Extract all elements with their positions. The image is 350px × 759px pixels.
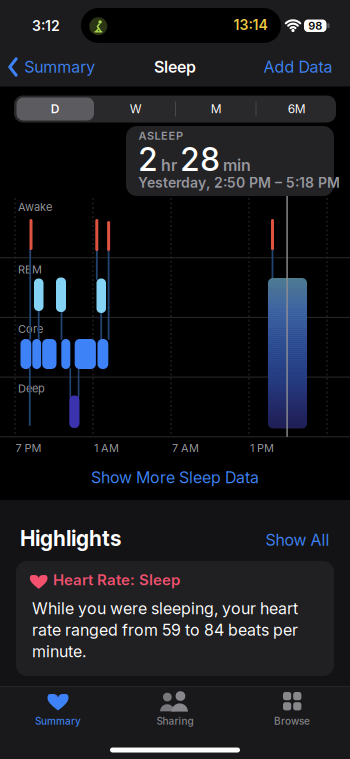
staticText: ASLEEP [138,129,183,142]
button[interactable]: Summary [0,682,116,734]
staticText: Sleep [154,58,196,76]
staticText: Heart Rate: Sleep [53,571,180,589]
button[interactable]: Add Data [263,58,332,76]
staticText: 7 AM [172,441,199,454]
staticText: minute. [32,642,86,661]
button[interactable]: Show All [265,531,329,549]
button[interactable]: 6M [257,95,336,122]
staticText: D [51,102,60,116]
button[interactable]: W [96,95,175,122]
button[interactable]: Browse [234,682,350,734]
button[interactable]: Heart Rate: Sleep [16,561,334,676]
button[interactable]: Summary [9,58,95,76]
staticText: Summary [35,715,81,727]
staticText: 28 [180,140,220,178]
staticText: Sharing [156,715,193,727]
staticText: min [223,156,251,175]
staticText: rate ranged from 59 to 84 beats per [32,620,298,639]
button[interactable]: D [16,95,95,122]
staticText: 98 [308,19,322,32]
staticText: REM [18,263,42,276]
staticText: Show All [265,531,329,549]
staticText: Browse [274,715,310,727]
staticText: 1 AM [94,441,119,454]
staticText: Yesterday, 2:50 PM – 5:18 PM [138,174,340,191]
button[interactable]: M [177,95,256,122]
staticText: 1 PM [250,441,274,454]
staticText: Highlights [20,526,121,551]
staticText: 6M [288,102,306,116]
staticText: While you were sleeping, your heart [32,599,298,618]
staticText: Add Data [263,58,332,76]
staticText: 2 [138,140,158,178]
staticText: 3:12 [32,18,60,34]
staticText: Core [18,322,43,335]
button[interactable]: Show More Sleep Data [91,468,259,487]
staticText: W [130,102,142,116]
staticText: Show More Sleep Data [91,468,259,487]
staticText: M [211,102,222,116]
staticText: 13:14 [233,17,267,33]
staticText: Awake [18,200,52,213]
staticText: Deep [18,382,45,395]
staticText: hr [161,156,177,175]
staticText: 7 PM [15,441,41,454]
staticText: Summary [24,58,95,76]
button[interactable]: Sharing [117,682,233,734]
